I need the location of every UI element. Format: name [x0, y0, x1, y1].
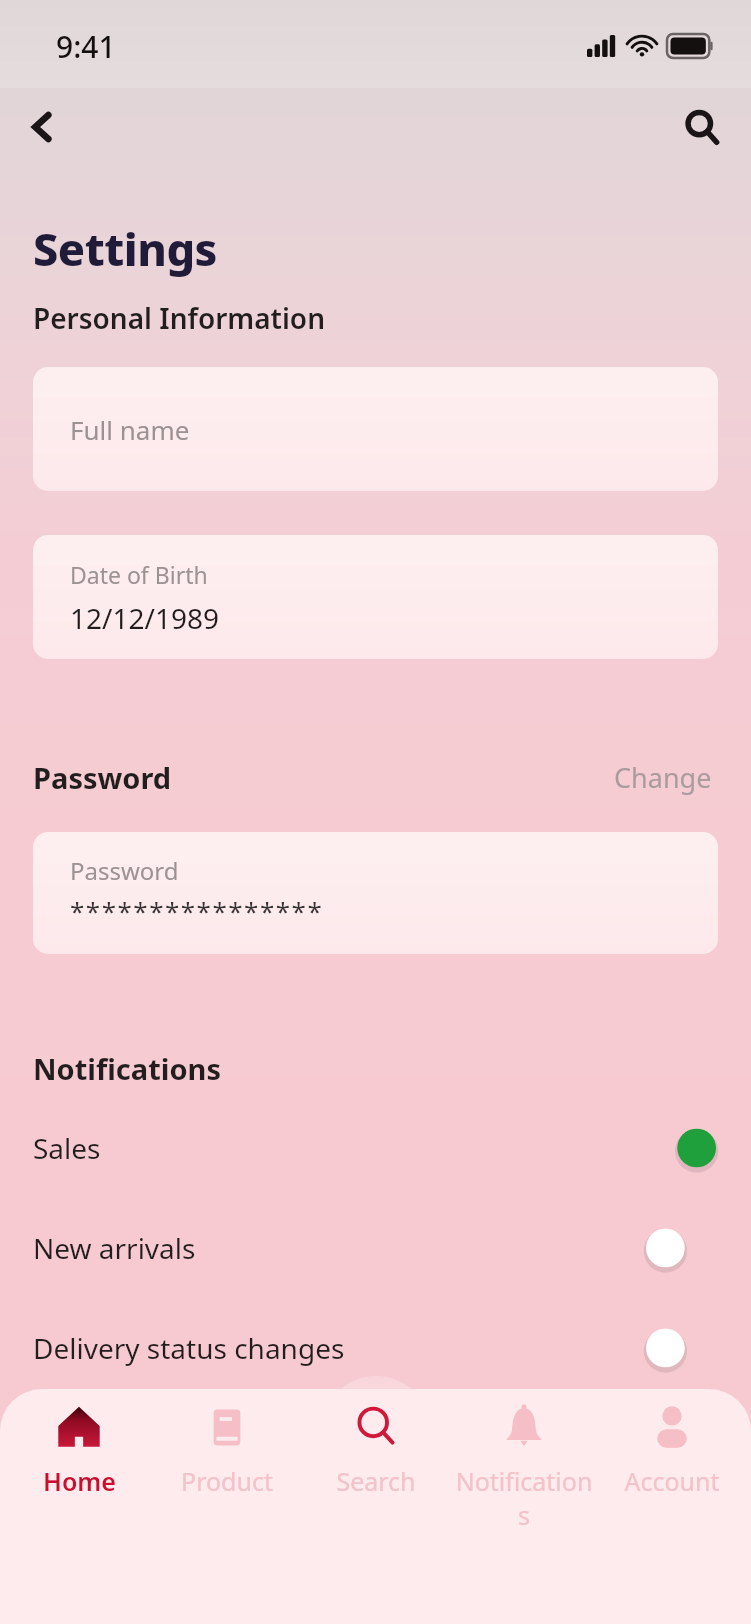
staticText: Product	[181, 1464, 273, 1498]
staticText: ****************	[70, 893, 324, 928]
staticText: Notifications	[455, 1464, 593, 1532]
button[interactable]: Search	[673, 98, 731, 156]
staticText: Sales	[33, 1129, 101, 1167]
staticText: Home	[43, 1464, 116, 1498]
staticText: Password	[33, 758, 172, 797]
button[interactable]: Notifications	[455, 1398, 593, 1538]
staticText: 12/12/1989	[70, 599, 219, 637]
button[interactable]: Product	[158, 1398, 296, 1504]
staticText: Personal Information	[33, 299, 326, 337]
staticText: Delivery status changes	[33, 1329, 345, 1367]
staticText: Full name	[70, 412, 190, 447]
staticText: Notifications	[33, 1049, 221, 1088]
button[interactable]: Delivery status changes	[33, 1320, 718, 1376]
staticText: New arrivals	[33, 1229, 196, 1267]
button[interactable]: Full name	[33, 367, 718, 491]
staticText: Change	[614, 759, 712, 796]
button[interactable]: Search	[307, 1398, 445, 1504]
button[interactable]: Home	[10, 1398, 148, 1504]
button[interactable]: Back	[14, 98, 72, 156]
button[interactable]: Password	[33, 832, 718, 954]
staticText: Date of Birth	[70, 559, 208, 590]
staticText: Settings	[33, 218, 218, 279]
button[interactable]: Change	[608, 755, 718, 800]
button[interactable]: Sales	[33, 1120, 718, 1176]
button[interactable]: Account	[603, 1398, 741, 1504]
staticText: Search	[336, 1464, 416, 1498]
staticText: 9:41	[56, 26, 116, 67]
staticText: Password	[70, 854, 179, 887]
button[interactable]: Date of Birth	[33, 535, 718, 659]
staticText: Account	[624, 1464, 720, 1498]
button[interactable]: New arrivals	[33, 1220, 718, 1276]
